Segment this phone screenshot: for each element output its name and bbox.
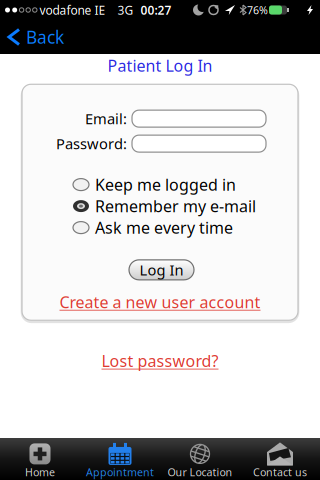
staticText: Keep me logged in — [95, 174, 236, 195]
staticText: Ask me every time — [95, 217, 233, 238]
button[interactable]: Our Location — [160, 438, 240, 480]
button[interactable]: Appointment — [80, 438, 160, 480]
button[interactable]: Create a new user account — [59, 291, 260, 313]
staticText: Back — [26, 25, 64, 48]
button[interactable]: Password — [132, 135, 266, 152]
staticText: Home — [25, 465, 55, 479]
button[interactable]: Back — [0, 20, 64, 54]
staticText: Lost password? — [101, 350, 218, 371]
staticText: vodafone IE — [39, 2, 105, 18]
button[interactable]: Keep me logged in — [73, 174, 236, 195]
staticText: Appointment — [86, 465, 154, 479]
staticText: 76% — [247, 3, 268, 17]
staticText: Our Location — [167, 465, 232, 479]
button[interactable]: Home — [0, 438, 80, 480]
button[interactable]: Remember my e-mail — [73, 195, 256, 217]
button[interactable]: Email — [132, 110, 266, 127]
staticText: Password: — [56, 134, 127, 153]
staticText: Create a new user account — [59, 291, 260, 313]
button[interactable]: Lost password? — [101, 350, 218, 371]
staticText: Patient Log In — [107, 55, 212, 76]
staticText: 00:27 — [140, 2, 171, 18]
button[interactable]: Log In — [127, 260, 192, 280]
staticText: Log In — [139, 260, 183, 280]
staticText: 3G — [117, 2, 133, 18]
button[interactable]: Contact us — [240, 438, 320, 480]
button[interactable]: Ask me every time — [73, 217, 233, 238]
staticText: Email: — [85, 109, 127, 128]
staticText: Contact us — [253, 465, 307, 479]
staticText: Remember my e-mail — [95, 195, 256, 217]
